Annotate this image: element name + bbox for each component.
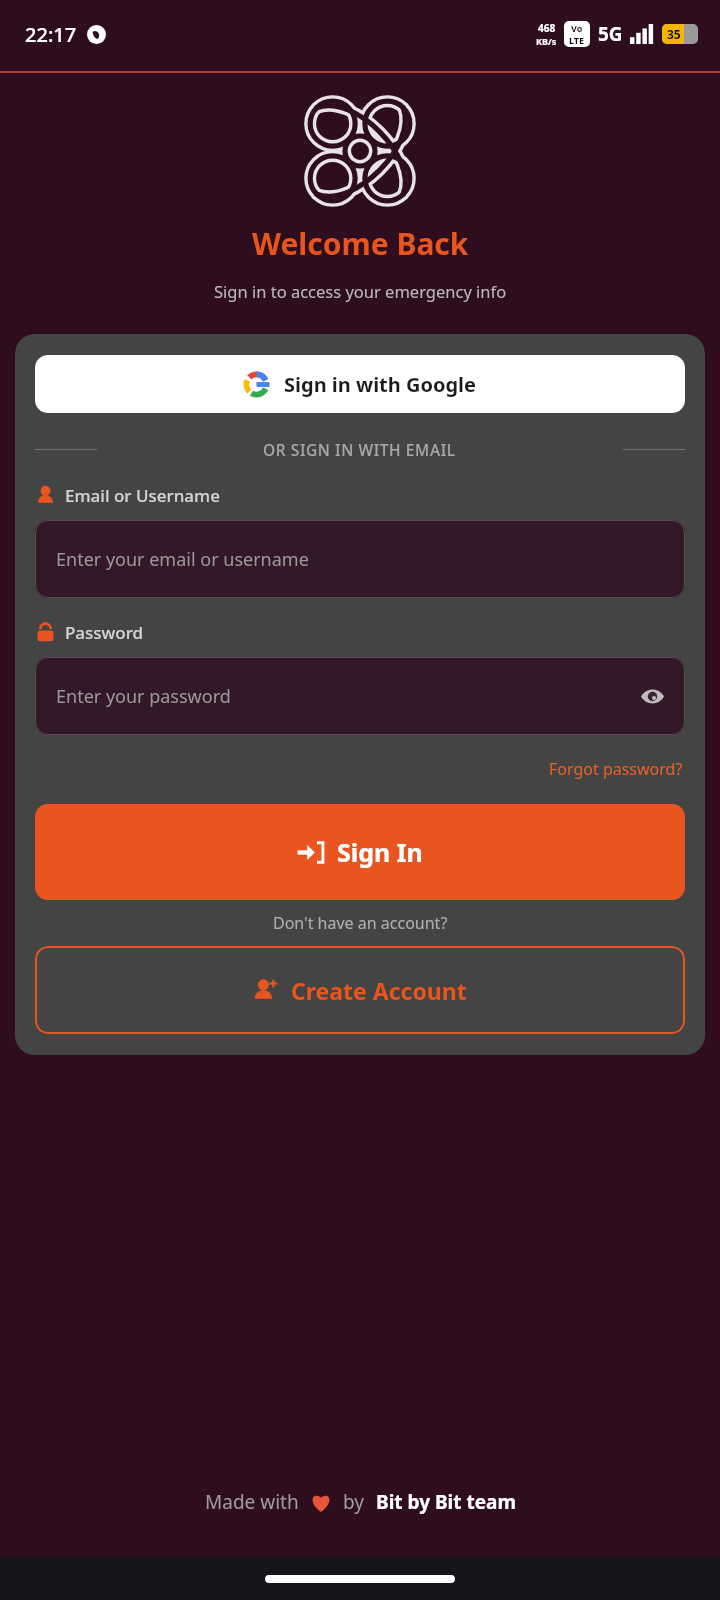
staticText: Don't have an account? (273, 912, 448, 934)
button[interactable]: Enter your email or username (35, 520, 685, 598)
button[interactable]: Sign in with Google (35, 355, 685, 413)
staticText: Bit by Bit team (376, 1489, 516, 1515)
button[interactable]: Enter your password (35, 657, 685, 735)
button[interactable]: Forgot password? (547, 756, 685, 782)
staticText: Email or Username (65, 484, 220, 507)
staticText: 22:17 (25, 21, 77, 48)
staticText: Enter your email or username (56, 547, 309, 572)
staticText: LTE (569, 34, 585, 46)
staticText: Made with (205, 1489, 299, 1515)
staticText: Welcome Back (252, 223, 469, 264)
staticText: Forgot password? (549, 758, 683, 780)
staticText: Sign In (337, 835, 423, 869)
staticText: Enter your password (56, 684, 231, 709)
staticText: 35 (667, 26, 681, 42)
button[interactable]: Show password (635, 679, 669, 713)
button[interactable]: Sign In (35, 804, 685, 900)
staticText: Sign in with Google (284, 371, 477, 398)
staticText: Create Account (291, 975, 467, 1006)
staticText: 5G (598, 21, 623, 47)
staticText: by (343, 1489, 364, 1515)
staticText: OR SIGN IN WITH EMAIL (263, 439, 456, 460)
staticText: KB/s (536, 35, 557, 47)
staticText: Vo (571, 22, 583, 34)
staticText: Sign in to access your emergency info (214, 280, 507, 302)
staticText: 468 (538, 21, 556, 35)
staticText: Password (65, 621, 144, 644)
button[interactable]: Create Account (35, 946, 685, 1034)
